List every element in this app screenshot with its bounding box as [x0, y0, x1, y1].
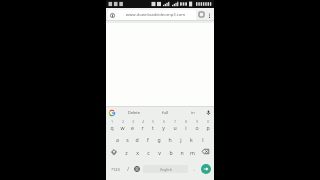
staticText: 8 [185, 120, 187, 124]
staticText: y [162, 124, 165, 131]
staticText: d [135, 136, 139, 143]
staticText: f [147, 136, 149, 143]
staticText: full [162, 110, 168, 115]
staticText: z [125, 149, 128, 156]
staticText: 6 [163, 120, 165, 124]
button[interactable]: Google search [108, 109, 115, 116]
button[interactable]: v [154, 145, 165, 158]
staticText: 1 [111, 120, 113, 124]
button[interactable]: Shift [107, 145, 121, 158]
button[interactable]: j [175, 132, 186, 145]
staticText: h [168, 136, 172, 143]
button[interactable]: h [164, 132, 175, 145]
staticText: 0 [207, 120, 209, 124]
staticText: r [141, 124, 144, 131]
staticText: . [193, 166, 195, 172]
staticText: c [147, 149, 150, 156]
staticText: m [190, 149, 195, 156]
staticText: 3 [132, 120, 134, 124]
button[interactable]: 6 [158, 119, 169, 132]
button[interactable]: g [153, 132, 164, 145]
button[interactable]: 8 [180, 119, 191, 132]
staticText: t [152, 124, 154, 131]
staticText: e [131, 124, 134, 131]
staticText: 5 [152, 120, 154, 124]
button[interactable]: f [142, 132, 153, 145]
button[interactable]: 2 [117, 119, 127, 132]
button[interactable]: Enter [198, 159, 213, 179]
staticText: ?123 [111, 167, 120, 172]
button[interactable]: More options [206, 12, 212, 18]
staticText: b [169, 149, 173, 156]
staticText: j [180, 136, 182, 143]
button[interactable]: Backspace [198, 145, 213, 158]
button[interactable]: d [132, 132, 142, 145]
button[interactable]: Tabs [198, 11, 205, 18]
button[interactable]: n [176, 145, 187, 158]
button[interactable]: 5 [147, 119, 158, 132]
button[interactable]: 9 [191, 119, 202, 132]
button[interactable]: l [197, 132, 208, 145]
staticText: www.downloadvideomp3.com [117, 12, 194, 18]
staticText: Delete [128, 110, 140, 115]
button[interactable]: x [132, 145, 143, 158]
staticText: in [191, 110, 195, 115]
staticText: a [116, 136, 119, 143]
button[interactable]: a [112, 132, 122, 145]
staticText: k [190, 136, 193, 143]
button[interactable]: z [121, 145, 132, 158]
staticText: 9 [196, 120, 198, 124]
button[interactable]: Change keyboard language [132, 159, 142, 179]
button[interactable]: Delete [117, 110, 150, 115]
button[interactable]: 3 [127, 119, 137, 132]
staticText: x [136, 149, 139, 156]
button[interactable]: c [143, 145, 154, 158]
staticText: u [173, 124, 177, 131]
button[interactable]: 7 [169, 119, 180, 132]
button[interactable]: Voice input [205, 109, 212, 116]
button[interactable]: 1 [107, 119, 117, 132]
button[interactable]: s [122, 132, 132, 145]
button[interactable]: b [165, 145, 176, 158]
button[interactable]: 4 [137, 119, 147, 132]
staticText: English [160, 167, 172, 172]
button[interactable]: full [150, 110, 180, 115]
button[interactable]: 0 [202, 119, 213, 132]
staticText: 4 [142, 120, 144, 124]
staticText: / [127, 166, 129, 172]
staticText: g [157, 136, 161, 143]
button[interactable]: in [180, 110, 205, 115]
button[interactable]: m [187, 145, 198, 158]
staticText: s [126, 136, 129, 143]
button[interactable]: www.downloadvideomp3.com [108, 10, 196, 20]
staticText: w [120, 124, 125, 131]
staticText: p [206, 124, 210, 131]
staticText: q [110, 124, 114, 131]
staticText: o [195, 124, 199, 131]
button[interactable]: / [123, 159, 132, 179]
staticText: v [158, 149, 161, 156]
staticText: 2 [122, 120, 124, 124]
staticText: 7 [174, 120, 176, 124]
button[interactable]: ?123 [107, 159, 123, 179]
staticText: i [185, 124, 187, 131]
staticText: n [180, 149, 184, 156]
staticText: l [202, 136, 204, 143]
button[interactable]: Space [143, 165, 188, 173]
button[interactable]: k [186, 132, 197, 145]
